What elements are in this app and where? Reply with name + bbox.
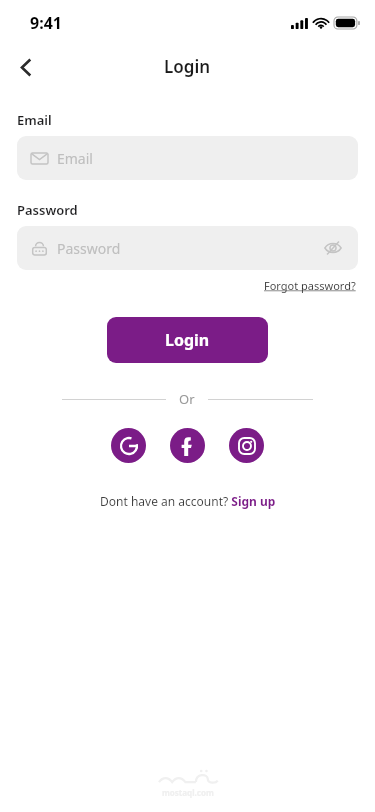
staticText: Login [164,55,211,78]
button[interactable]: Sign in with Instagram [229,428,264,463]
staticText: 9:41 [30,12,62,34]
staticText: Password [57,239,322,258]
button[interactable]: Forgot password? [262,276,358,295]
button[interactable]: Back [6,47,46,87]
staticText: Or [179,390,195,408]
button[interactable]: Show password [322,237,344,259]
button[interactable]: Sign in with Facebook [170,428,205,463]
staticText: Password [17,201,78,219]
staticText: Email [57,149,344,168]
staticText: Email [17,111,52,129]
button[interactable]: Sign in with Google [111,428,146,463]
button[interactable]: Password [17,226,358,270]
staticText: mostaql.com [162,787,214,798]
button[interactable]: Email [17,136,358,180]
button[interactable]: Login [107,317,268,363]
button[interactable]: Dont have an account? Sign up [96,489,280,513]
staticText: Login [165,329,210,351]
